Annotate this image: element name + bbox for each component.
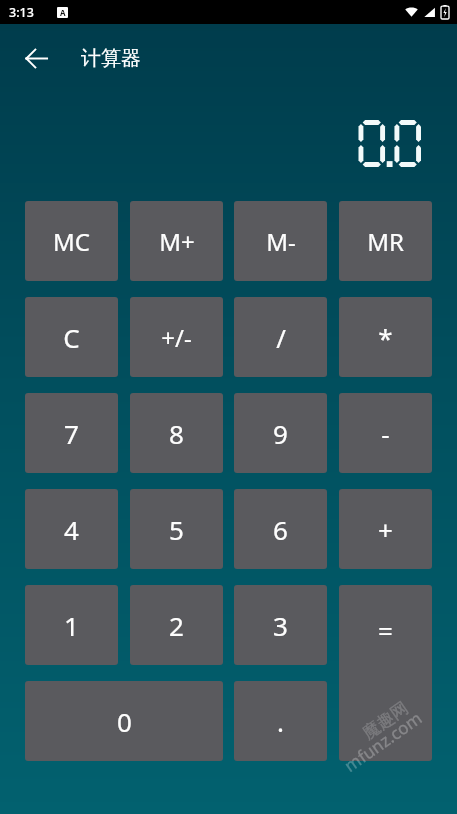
button[interactable]: . bbox=[234, 681, 327, 761]
button[interactable]: M+ bbox=[130, 201, 223, 281]
staticText: 2 bbox=[169, 608, 184, 643]
staticText: 计算器 bbox=[81, 46, 141, 71]
staticText: M+ bbox=[159, 225, 195, 258]
staticText: / bbox=[276, 320, 286, 355]
button[interactable]: 5 bbox=[130, 489, 223, 569]
button[interactable]: - bbox=[339, 393, 432, 473]
staticText: A bbox=[60, 7, 66, 18]
staticText: 6 bbox=[273, 512, 288, 547]
button[interactable]: +/- bbox=[130, 297, 223, 377]
staticText: MC bbox=[53, 225, 90, 258]
staticText: = bbox=[378, 613, 393, 648]
staticText: C bbox=[63, 320, 80, 355]
staticText: * bbox=[378, 320, 393, 355]
staticText: 3 bbox=[273, 608, 288, 643]
staticText: 4 bbox=[64, 512, 79, 547]
button[interactable]: 2 bbox=[130, 585, 223, 665]
button[interactable]: Back bbox=[12, 34, 60, 82]
button[interactable]: C bbox=[25, 297, 118, 377]
button[interactable]: M- bbox=[234, 201, 327, 281]
staticText: 7 bbox=[64, 416, 79, 451]
button[interactable]: 8 bbox=[130, 393, 223, 473]
button[interactable]: 1 bbox=[25, 585, 118, 665]
button[interactable]: / bbox=[234, 297, 327, 377]
staticText: 8 bbox=[169, 416, 184, 451]
button[interactable]: 7 bbox=[25, 393, 118, 473]
button[interactable]: 4 bbox=[25, 489, 118, 569]
staticText: . bbox=[277, 704, 284, 739]
button[interactable]: 0 bbox=[25, 681, 223, 761]
staticText: 1 bbox=[64, 608, 79, 643]
button[interactable]: MC bbox=[25, 201, 118, 281]
button[interactable]: = bbox=[339, 585, 432, 761]
staticText: 9 bbox=[273, 416, 288, 451]
staticText: 3:13 bbox=[9, 4, 34, 21]
button[interactable]: * bbox=[339, 297, 432, 377]
staticText: M- bbox=[266, 225, 296, 258]
staticText: - bbox=[381, 416, 390, 451]
staticText: 魔趣网 bbox=[359, 697, 412, 744]
button[interactable]: 6 bbox=[234, 489, 327, 569]
staticText: + bbox=[378, 512, 393, 547]
button[interactable]: 3 bbox=[234, 585, 327, 665]
button[interactable]: MR bbox=[339, 201, 432, 281]
staticText: 0 bbox=[117, 704, 132, 739]
button[interactable]: + bbox=[339, 489, 432, 569]
staticText: MR bbox=[367, 225, 404, 258]
staticText: +/- bbox=[161, 321, 192, 354]
staticText: 5 bbox=[169, 512, 184, 547]
button[interactable]: 9 bbox=[234, 393, 327, 473]
staticText: mfunz.com bbox=[339, 706, 426, 777]
